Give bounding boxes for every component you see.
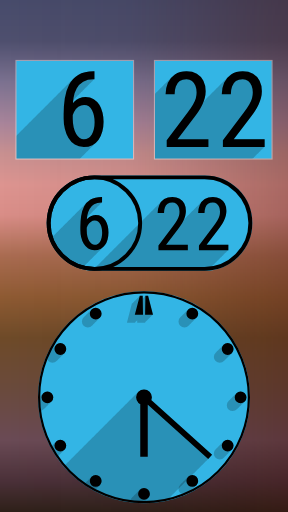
button[interactable]: Clock widget preview xyxy=(0,0,288,512)
